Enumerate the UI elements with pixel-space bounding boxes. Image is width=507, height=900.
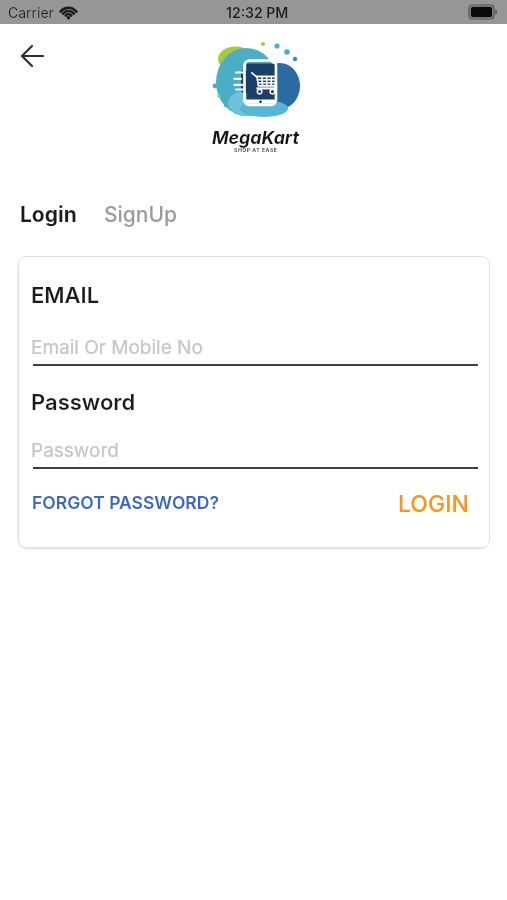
staticText: Password (31, 389, 136, 416)
staticText: FORGOT PASSWORD? (32, 492, 219, 513)
staticText: SHOP AT EASE (234, 147, 278, 153)
button[interactable]: Password (33, 429, 478, 469)
staticText: Carrier (8, 4, 54, 21)
button[interactable]: Login (14, 196, 83, 233)
staticText: Password (31, 439, 119, 462)
button[interactable]: FORGOT PASSWORD? (32, 488, 219, 517)
staticText: Email Or Mobile No (31, 336, 203, 359)
button[interactable]: SignUp (98, 196, 184, 233)
button[interactable] (12, 38, 52, 74)
staticText: Login (20, 202, 77, 227)
button[interactable]: Email Or Mobile No (33, 326, 478, 366)
staticText: MegaKart (212, 127, 300, 149)
staticText: SignUp (104, 202, 178, 227)
staticText: EMAIL (31, 282, 100, 309)
staticText: 12:32 PM (226, 4, 289, 21)
button[interactable]: LOGIN (392, 484, 475, 524)
staticText: LOGIN (398, 490, 469, 518)
